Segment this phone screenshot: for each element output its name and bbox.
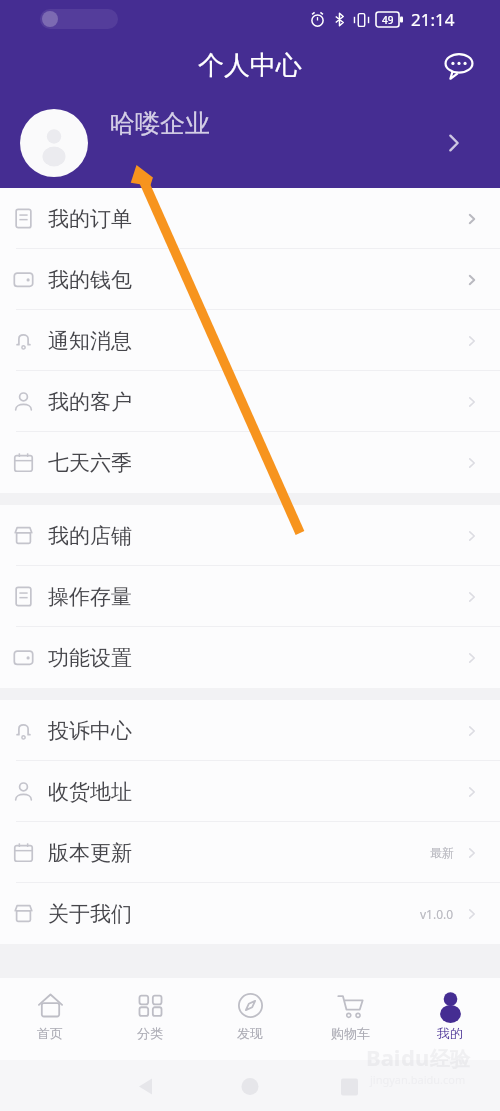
staticText: 49 <box>382 13 394 27</box>
button[interactable]: 版本更新 <box>0 822 500 883</box>
staticText: 首页 <box>37 1025 63 1041</box>
staticText: v1.0.0 <box>420 906 454 922</box>
staticText: 发现 <box>237 1025 263 1041</box>
button[interactable]: 我的客户 <box>0 371 500 432</box>
staticText: 最新 <box>430 845 454 860</box>
button[interactable]: 功能设置 <box>0 627 500 688</box>
button[interactable]: 哈喽企业 <box>0 92 500 188</box>
staticText: 个人中心 <box>198 49 302 82</box>
staticText: 我的订单 <box>48 206 132 232</box>
button[interactable]: 发现 <box>200 978 300 1060</box>
staticText: 分类 <box>137 1025 163 1041</box>
staticText: du <box>401 1042 430 1072</box>
button[interactable]: 通知消息 <box>0 310 500 371</box>
button[interactable]: 购物车 <box>300 978 400 1060</box>
staticText: 我的钱包 <box>48 267 132 293</box>
button[interactable]: 我的店铺 <box>0 505 500 566</box>
staticText: 版本更新 <box>48 840 132 866</box>
staticText: 购物车 <box>331 1025 370 1041</box>
staticText: 哈喽企业 <box>110 108 210 139</box>
button[interactable]: Messages <box>440 46 478 84</box>
staticText: 我的店铺 <box>48 523 132 549</box>
staticText: 功能设置 <box>48 645 132 671</box>
staticText: 收货地址 <box>48 779 132 805</box>
staticText: 通知消息 <box>48 328 132 354</box>
button[interactable]: 我的订单 <box>0 188 500 249</box>
button[interactable]: 我的钱包 <box>0 249 500 310</box>
button[interactable]: 关于我们 <box>0 883 500 944</box>
staticText: 操作存量 <box>48 584 132 610</box>
staticText: 21:14 <box>411 8 455 31</box>
staticText: 关于我们 <box>48 901 132 927</box>
staticText: 我的客户 <box>48 389 132 415</box>
staticText: 经验 <box>430 1047 470 1072</box>
button[interactable]: 我的 <box>400 978 500 1060</box>
button[interactable]: 收货地址 <box>0 761 500 822</box>
button[interactable]: 投诉中心 <box>0 700 500 761</box>
staticText: 投诉中心 <box>48 718 132 744</box>
button[interactable]: 首页 <box>0 978 100 1060</box>
staticText: Bai <box>366 1042 401 1072</box>
staticText: 七天六季 <box>48 450 132 476</box>
button[interactable]: 七天六季 <box>0 432 500 493</box>
staticText: 我的 <box>437 1025 463 1041</box>
button[interactable]: 操作存量 <box>0 566 500 627</box>
button[interactable]: 分类 <box>100 978 200 1060</box>
